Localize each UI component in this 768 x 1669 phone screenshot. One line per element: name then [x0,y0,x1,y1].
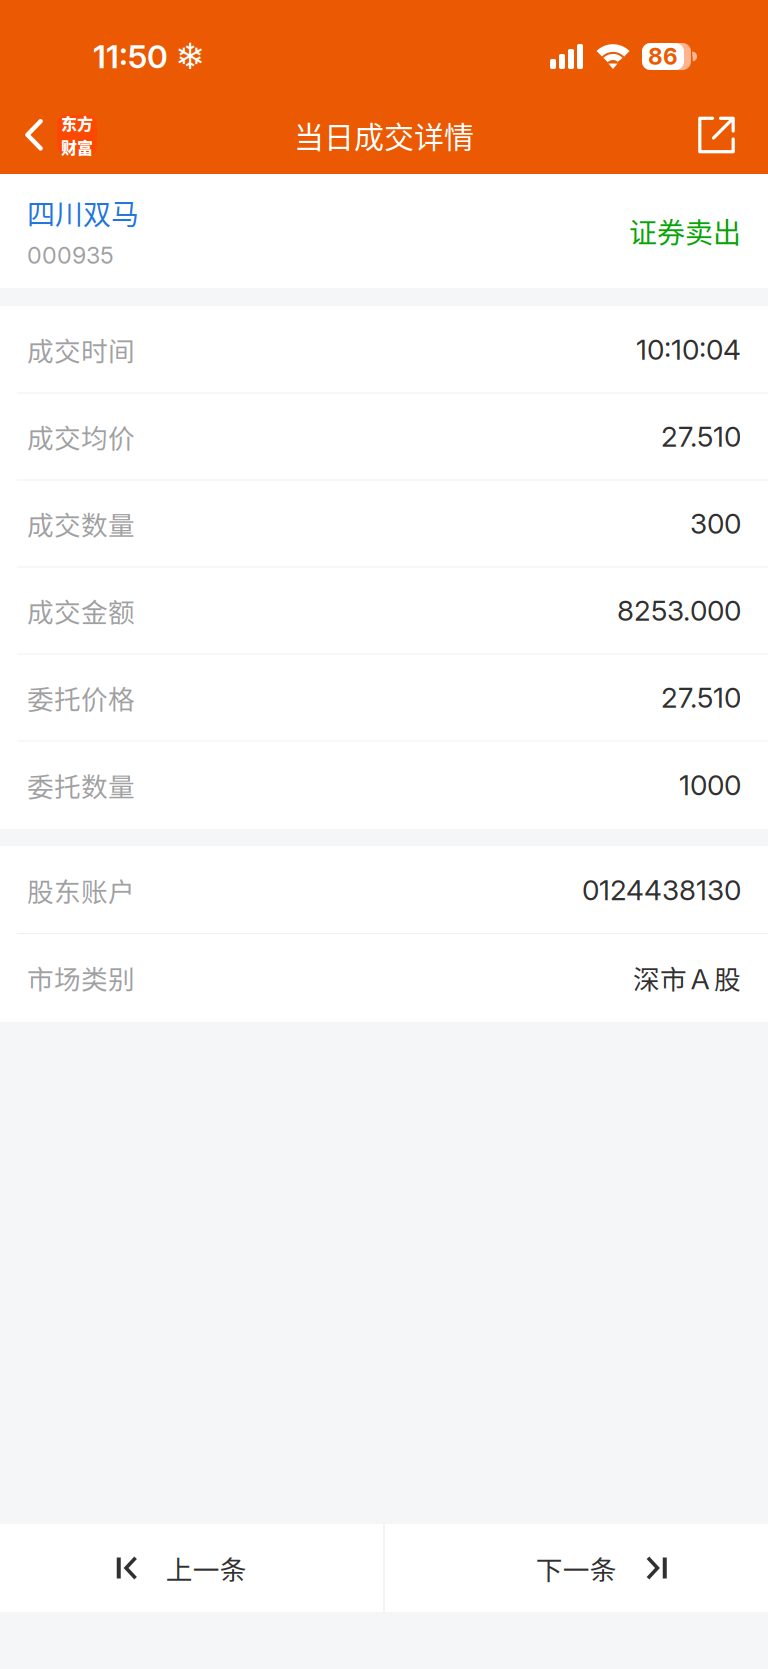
button[interactable]: 下一条 [384,1524,768,1612]
staticText: 当日成交详情 [294,113,474,157]
staticText: 0124438130 [582,873,741,907]
staticText: 10:10:04 [636,333,741,366]
staticText: 成交均价 [27,417,135,456]
staticText: 成交金额 [27,591,135,630]
staticText: 证券卖出 [629,211,741,251]
staticText: 四川双马 [27,193,139,233]
staticText: 上一条 [166,1549,247,1587]
staticText: 东方 [61,111,93,134]
staticText: 深市Ａ股 [633,958,741,997]
staticText: 成交数量 [27,504,135,543]
staticText: 财富 [61,135,93,159]
staticText: 成交时间 [27,330,135,369]
staticText: 86 [648,43,678,70]
button[interactable]: 返回 东方财富 [0,96,109,174]
staticText: 委托数量 [27,766,135,804]
staticText: 000935 [27,241,114,269]
staticText: 1000 [679,768,741,802]
staticText: ❄ [175,35,205,77]
staticText: 27.510 [661,420,741,453]
button[interactable]: 分享 [674,96,768,174]
staticText: 27.510 [661,681,741,714]
staticText: 市场类别 [27,958,135,997]
staticText: 委托价格 [27,678,135,717]
staticText: 8253.000 [617,594,741,627]
button[interactable]: 上一条 [0,1524,383,1612]
staticText: 下一条 [536,1549,617,1587]
staticText: 300 [690,507,741,540]
staticText: 11:50 [93,37,168,76]
staticText: 股东账户 [27,871,135,909]
